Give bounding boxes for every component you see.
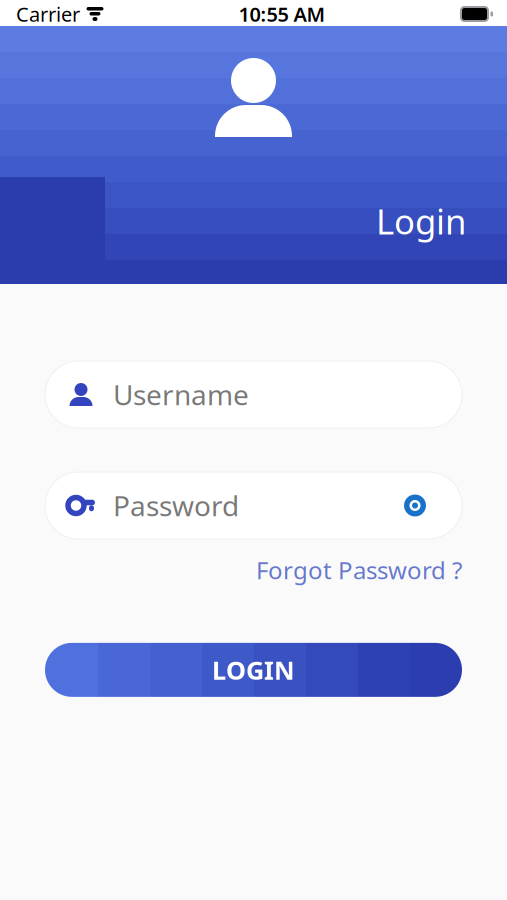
staticText: Username	[113, 376, 249, 413]
staticText: Carrier	[16, 1, 80, 27]
staticText: LOGIN	[212, 653, 295, 687]
button[interactable]: Login	[370, 194, 472, 248]
button[interactable]: Password	[45, 472, 462, 539]
button[interactable]: LOGIN	[45, 643, 462, 697]
staticText: 10:55 AM	[238, 1, 325, 27]
staticText: Forgot Password ?	[256, 554, 462, 586]
button[interactable]: Username	[45, 361, 462, 428]
staticText: Password	[113, 487, 239, 524]
button[interactable]: Forgot Password ?	[256, 549, 462, 591]
staticText: Login	[376, 198, 466, 244]
